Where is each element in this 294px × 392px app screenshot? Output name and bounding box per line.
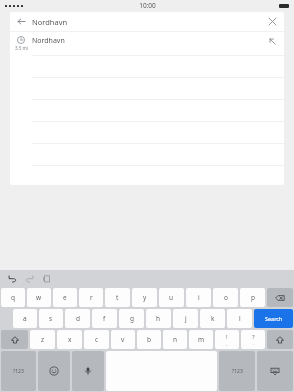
button[interactable]: j — [173, 309, 198, 328]
button[interactable]: w — [27, 288, 51, 307]
staticText: u — [169, 293, 174, 302]
button[interactable]: i — [186, 288, 211, 307]
button[interactable]: g — [119, 309, 144, 328]
button[interactable]: f — [92, 309, 117, 328]
button[interactable]: u — [159, 288, 184, 307]
staticText: Search — [265, 315, 283, 322]
button[interactable]: Redo — [21, 270, 38, 287]
staticText: i — [198, 293, 200, 302]
button[interactable]: Undo — [4, 270, 21, 287]
button[interactable]: Backspace — [267, 288, 293, 307]
staticText: h — [156, 314, 161, 323]
staticText: t — [116, 293, 119, 302]
staticText: e — [63, 293, 67, 302]
staticText: v — [121, 335, 125, 344]
button[interactable]: e — [53, 288, 77, 307]
staticText: g — [130, 314, 134, 323]
button[interactable]: Hide keyboard — [257, 351, 293, 391]
button[interactable]: m — [189, 330, 213, 349]
button[interactable]: Voice input — [72, 351, 104, 391]
staticText: Nordhavn — [32, 36, 260, 46]
button[interactable]: Search — [254, 309, 293, 328]
staticText: b — [147, 335, 151, 344]
button[interactable]: v — [111, 330, 135, 349]
staticText: y — [143, 293, 147, 302]
button[interactable]: ? — [241, 330, 265, 349]
button[interactable]: o — [213, 288, 238, 307]
button[interactable]: ?123 — [219, 351, 255, 391]
staticText: p — [251, 293, 255, 302]
button[interactable]: Clear — [260, 12, 284, 31]
staticText: ? — [252, 333, 255, 341]
staticText: k — [211, 314, 215, 323]
button[interactable]: Shift — [1, 330, 28, 349]
staticText: r — [90, 293, 93, 302]
staticText: 3.5 mi — [15, 45, 28, 51]
staticText: . — [253, 341, 255, 346]
staticText: 10:00 — [139, 1, 156, 10]
button[interactable]: Back — [10, 12, 284, 31]
staticText: x — [68, 335, 72, 344]
staticText: a — [23, 314, 27, 323]
button[interactable]: l — [227, 309, 252, 328]
button[interactable]: 3.5 mi — [10, 32, 284, 55]
staticText: , — [226, 341, 228, 346]
button[interactable]: d — [65, 309, 90, 328]
button[interactable]: k — [200, 309, 225, 328]
button[interactable]: y — [132, 288, 157, 307]
staticText: n — [173, 335, 178, 344]
staticText: ?123 — [13, 368, 24, 375]
staticText: m — [198, 335, 205, 344]
button[interactable]: b — [137, 330, 161, 349]
staticText: s — [49, 314, 53, 323]
staticText: c — [95, 335, 99, 344]
staticText: j — [185, 314, 187, 323]
staticText: w — [36, 293, 42, 302]
button[interactable]: z — [30, 330, 55, 349]
staticText: z — [41, 335, 45, 344]
button[interactable]: c — [84, 330, 109, 349]
button[interactable]: Shift — [267, 330, 293, 349]
button[interactable]: h — [146, 309, 171, 328]
button[interactable]: ?123 — [1, 351, 36, 391]
button[interactable]: n — [163, 330, 187, 349]
staticText: ! — [226, 333, 228, 341]
staticText: d — [76, 314, 80, 323]
button[interactable]: Back — [10, 12, 32, 31]
staticText: l — [239, 314, 241, 323]
button[interactable]: Emoji — [38, 351, 70, 391]
button[interactable]: q — [1, 288, 25, 307]
staticText: q — [11, 293, 15, 302]
staticText: ?123 — [232, 368, 243, 375]
button[interactable]: r — [79, 288, 103, 307]
button[interactable]: Use suggestion — [260, 32, 284, 50]
staticText: o — [224, 293, 228, 302]
button[interactable]: t — [105, 288, 130, 307]
button[interactable]: Paste — [38, 270, 55, 287]
button[interactable]: a — [13, 309, 37, 328]
button[interactable]: ! — [215, 330, 239, 349]
button[interactable]: s — [39, 309, 63, 328]
button[interactable]: p — [240, 288, 265, 307]
staticText: Nordhavn — [32, 17, 260, 27]
button[interactable]: x — [57, 330, 82, 349]
staticText: f — [103, 314, 106, 323]
